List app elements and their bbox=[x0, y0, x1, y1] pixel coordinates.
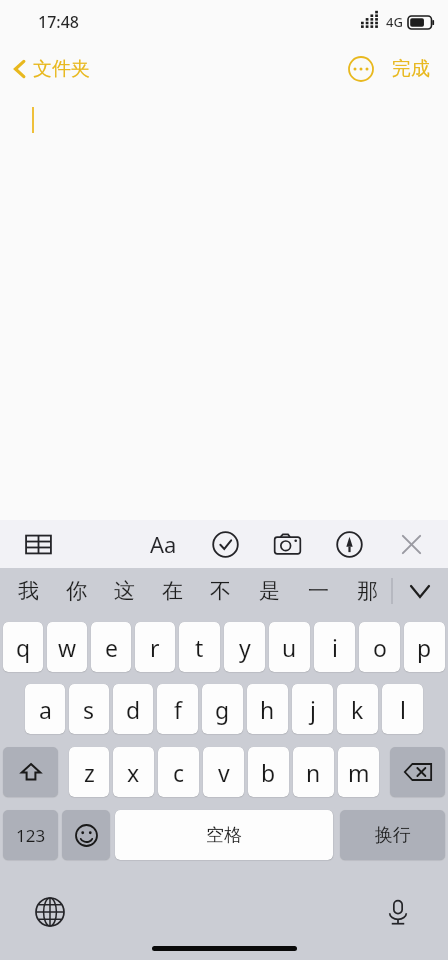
staticText: l bbox=[400, 694, 406, 725]
staticText: 空格 bbox=[206, 824, 242, 847]
button[interactable]: l bbox=[382, 684, 423, 734]
staticText: 一 bbox=[308, 578, 329, 604]
button[interactable]: r bbox=[135, 622, 175, 672]
button[interactable]: d bbox=[113, 684, 153, 734]
staticText: d bbox=[126, 694, 141, 725]
button[interactable]: 在 bbox=[148, 568, 196, 614]
button[interactable]: 那 bbox=[343, 568, 392, 614]
staticText: g bbox=[215, 694, 230, 725]
button[interactable]: Close keyboard bbox=[389, 522, 433, 566]
button[interactable]: Delete bbox=[390, 747, 445, 797]
button[interactable]: p bbox=[404, 622, 445, 672]
button[interactable]: b bbox=[248, 747, 289, 797]
staticText: 这 bbox=[114, 578, 135, 604]
button[interactable]: f bbox=[157, 684, 198, 734]
button[interactable]: 这 bbox=[100, 568, 148, 614]
button[interactable]: Markup bbox=[327, 522, 371, 566]
staticText: h bbox=[260, 694, 275, 725]
button[interactable]: k bbox=[337, 684, 378, 734]
staticText: u bbox=[282, 632, 297, 663]
button[interactable]: j bbox=[292, 684, 333, 734]
staticText: 完成 bbox=[392, 57, 430, 81]
button[interactable]: o bbox=[359, 622, 400, 672]
staticText: r bbox=[150, 632, 160, 663]
staticText: 那 bbox=[357, 578, 378, 604]
button[interactable]: m bbox=[338, 747, 379, 797]
staticText: 不 bbox=[210, 578, 231, 604]
button[interactable]: 我 bbox=[4, 568, 52, 614]
staticText: i bbox=[332, 632, 338, 663]
button[interactable]: g bbox=[202, 684, 243, 734]
button[interactable]: e bbox=[91, 622, 131, 672]
staticText: 你 bbox=[66, 578, 87, 604]
staticText: 4G bbox=[386, 13, 403, 31]
button[interactable]: u bbox=[269, 622, 310, 672]
button[interactable]: x bbox=[113, 747, 154, 797]
staticText: m bbox=[348, 757, 370, 788]
button[interactable]: h bbox=[247, 684, 288, 734]
button[interactable]: n bbox=[293, 747, 334, 797]
staticText: f bbox=[174, 694, 182, 725]
staticText: c bbox=[173, 757, 185, 788]
button[interactable]: a bbox=[25, 684, 65, 734]
button[interactable]: Aa bbox=[141, 522, 185, 566]
staticText: x bbox=[127, 757, 140, 788]
staticText: a bbox=[39, 694, 52, 725]
staticText: k bbox=[351, 694, 364, 725]
button[interactable]: 换行 bbox=[340, 810, 445, 860]
staticText: 换行 bbox=[375, 824, 411, 847]
staticText: n bbox=[306, 757, 321, 788]
button[interactable]: c bbox=[158, 747, 199, 797]
button[interactable]: w bbox=[47, 622, 87, 672]
button[interactable]: 是 bbox=[245, 568, 294, 614]
button[interactable]: Dictate bbox=[376, 890, 420, 934]
staticText: s bbox=[83, 694, 95, 725]
button[interactable]: Emoji bbox=[62, 810, 110, 860]
staticText: j bbox=[310, 694, 316, 725]
staticText: 在 bbox=[162, 578, 183, 604]
staticText: 是 bbox=[259, 578, 280, 604]
button[interactable]: t bbox=[179, 622, 220, 672]
button[interactable]: Insert table bbox=[16, 522, 60, 566]
button[interactable]: 你 bbox=[52, 568, 100, 614]
staticText: 123 bbox=[16, 824, 46, 847]
button[interactable]: 空格 bbox=[115, 810, 333, 860]
button[interactable]: Checklist bbox=[203, 522, 247, 566]
button[interactable]: q bbox=[3, 622, 43, 672]
staticText: 我 bbox=[18, 578, 39, 604]
button[interactable]: 完成 bbox=[388, 51, 434, 87]
button[interactable]: z bbox=[69, 747, 109, 797]
button[interactable]: More options bbox=[344, 52, 378, 86]
staticText: p bbox=[417, 632, 432, 663]
button[interactable]: 123 bbox=[3, 810, 58, 860]
button[interactable]: Change keyboard bbox=[28, 890, 72, 934]
staticText: o bbox=[373, 632, 387, 663]
staticText: 17:48 bbox=[38, 11, 79, 33]
staticText: z bbox=[84, 757, 95, 788]
staticText: q bbox=[16, 632, 31, 663]
button[interactable]: i bbox=[314, 622, 355, 672]
staticText: w bbox=[58, 632, 77, 663]
button[interactable]: 一 bbox=[294, 568, 343, 614]
staticText: b bbox=[261, 757, 276, 788]
button[interactable]: s bbox=[69, 684, 109, 734]
button[interactable]: 文件夹 bbox=[10, 51, 94, 87]
staticText: 文件夹 bbox=[33, 57, 90, 81]
button[interactable]: Expand candidates bbox=[400, 571, 440, 611]
staticText: e bbox=[105, 632, 118, 663]
staticText: Aa bbox=[150, 529, 177, 559]
staticText: t bbox=[195, 632, 204, 663]
button[interactable]: Shift bbox=[3, 747, 58, 797]
button[interactable]: Camera bbox=[265, 522, 309, 566]
staticText: y bbox=[239, 632, 251, 663]
button[interactable]: 不 bbox=[196, 568, 245, 614]
button[interactable]: y bbox=[224, 622, 265, 672]
button[interactable]: v bbox=[203, 747, 244, 797]
staticText: v bbox=[218, 757, 230, 788]
